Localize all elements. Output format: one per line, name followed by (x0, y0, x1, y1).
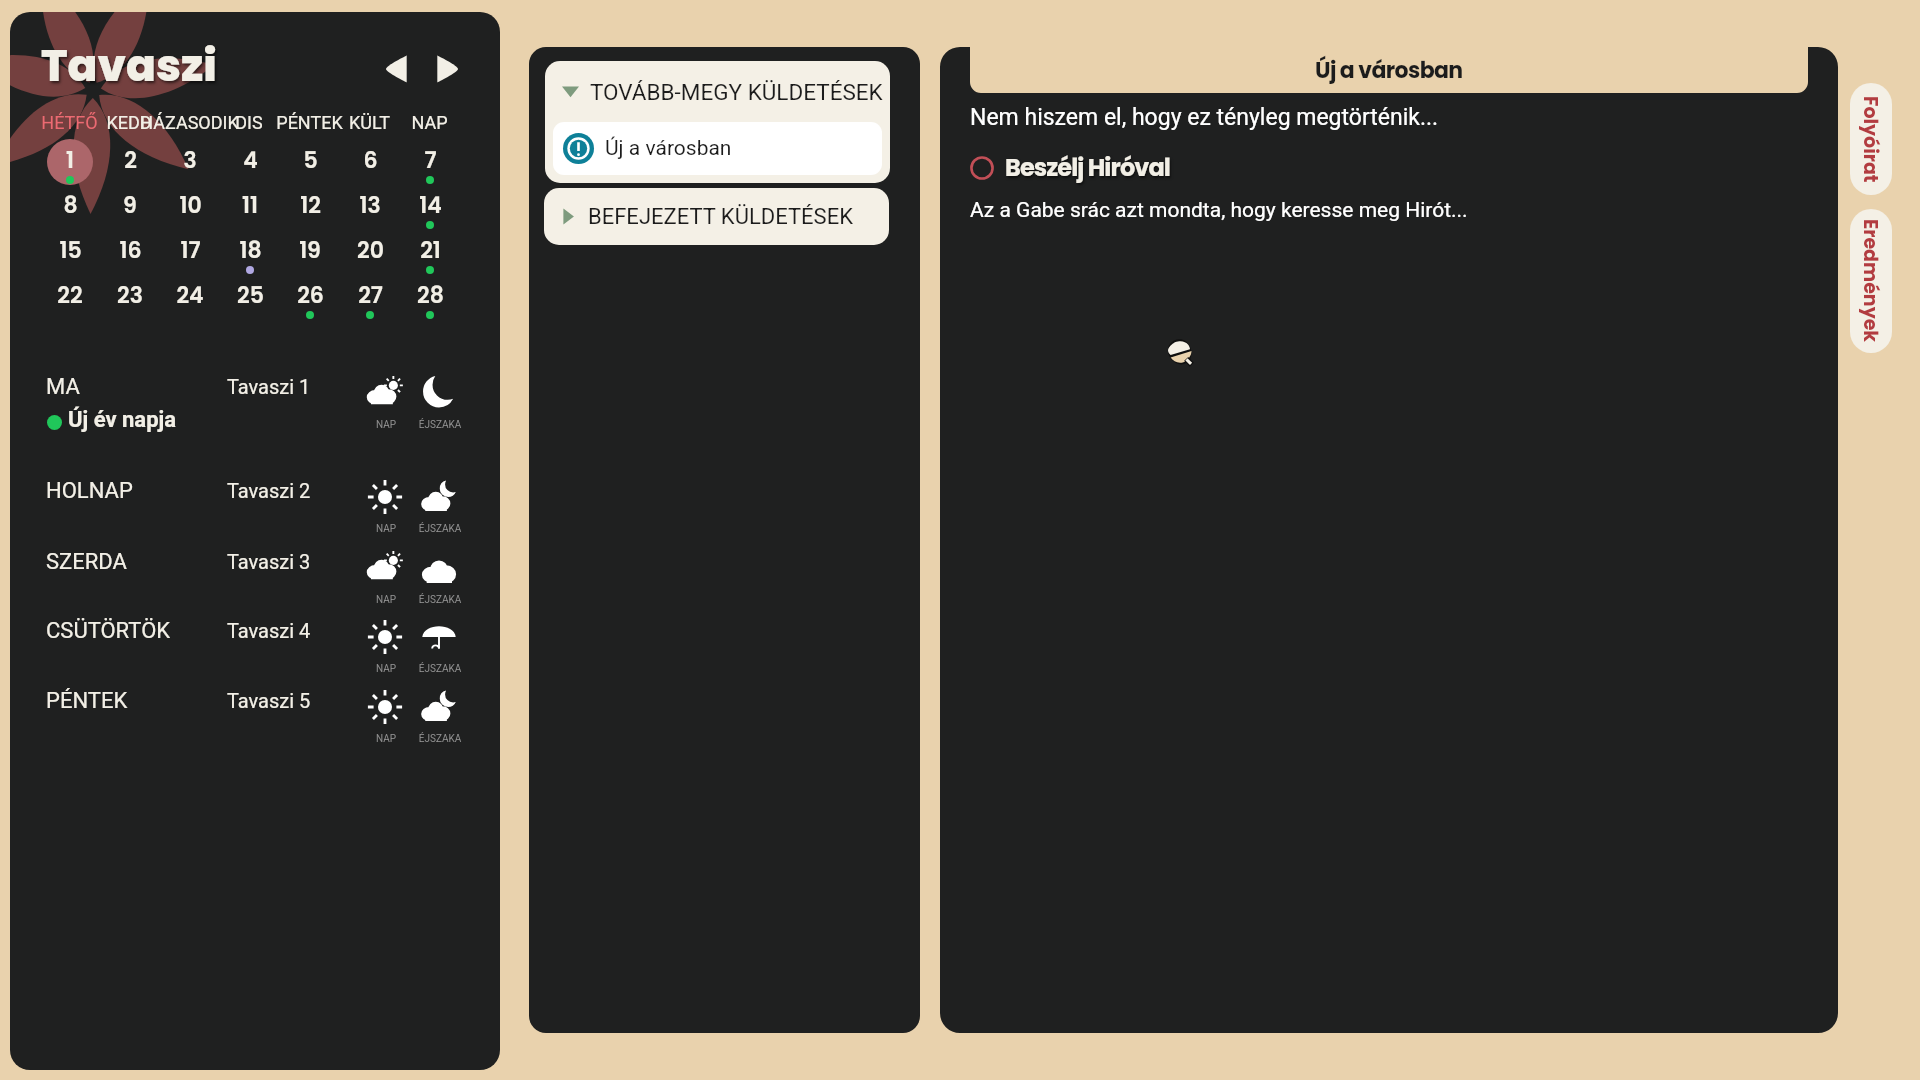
button[interactable]: 16 (100, 230, 160, 270)
staticText: 2 (124, 145, 137, 176)
button[interactable]: HOLNAP (10, 475, 500, 547)
staticText: NAP (358, 419, 414, 431)
staticText: PÉNTEK (46, 688, 128, 714)
button[interactable]: Új a városban (940, 47, 1838, 93)
button[interactable]: 28 (400, 275, 460, 315)
staticText: 4 (243, 145, 258, 176)
staticText: 28 (417, 280, 444, 311)
button[interactable]: 3 (160, 140, 220, 180)
button[interactable]: 9 (100, 185, 160, 225)
staticText: HOLNAP (46, 478, 133, 504)
staticText: 14 (419, 190, 442, 221)
button[interactable]: 23 (100, 275, 160, 315)
staticText: Tavaszi 5 (227, 689, 311, 712)
button[interactable]: 5 (280, 140, 340, 180)
button[interactable]: 19 (280, 230, 340, 270)
button[interactable]: 15 (40, 230, 100, 270)
staticText: 3 (183, 145, 197, 176)
staticText: 26 (297, 280, 324, 311)
staticText: Tavaszi 3 (227, 550, 311, 573)
button[interactable]: 27 (340, 275, 400, 315)
staticText: 6 (363, 145, 378, 176)
button[interactable]: Folyóirat (1850, 83, 1892, 195)
staticText: 13 (359, 190, 381, 221)
staticText: 5 (303, 145, 318, 176)
staticText: 18 (239, 235, 262, 266)
button[interactable]: 4 (220, 140, 280, 180)
button[interactable]: Next season (428, 50, 466, 88)
button[interactable]: 18 (220, 230, 280, 270)
staticText: HÉTFŐ (41, 112, 98, 133)
button[interactable]: 1 (40, 140, 100, 180)
staticText: Beszélj Hiróval (1005, 151, 1170, 185)
button[interactable]: 8 (40, 185, 100, 225)
button[interactable]: 12 (280, 185, 340, 225)
staticText: NAP (358, 594, 414, 606)
staticText: ÉJSZAKA (412, 663, 468, 675)
staticText: 23 (117, 280, 143, 311)
staticText: 16 (119, 235, 142, 266)
staticText: KEDD (106, 112, 152, 133)
staticText: Az a Gabe srác azt mondta, hogy keresse … (970, 198, 1468, 223)
staticText: MA (46, 374, 80, 400)
staticText: 24 (176, 280, 204, 311)
staticText: 22 (57, 280, 83, 311)
button[interactable]: 11 (220, 185, 280, 225)
button[interactable]: 13 (340, 185, 400, 225)
button[interactable]: 20 (340, 230, 400, 270)
staticText: Új év napja (68, 407, 177, 433)
staticText: KÜLT (349, 112, 390, 133)
staticText: NAP (358, 663, 414, 675)
button[interactable]: Új a városban (553, 122, 882, 175)
button[interactable]: BEFEJEZETT KÜLDETÉSEK (544, 188, 889, 245)
button[interactable]: 17 (160, 230, 220, 270)
button[interactable]: 6 (340, 140, 400, 180)
button[interactable]: 21 (400, 230, 460, 270)
staticText: Tavaszi 4 (227, 619, 311, 642)
staticText: 25 (237, 280, 264, 311)
staticText: 15 (59, 235, 82, 266)
button[interactable]: 2 (100, 140, 160, 180)
staticText: 21 (420, 235, 441, 266)
staticText: Új a városban (605, 136, 732, 161)
staticText: BEFEJEZETT KÜLDETÉSEK (588, 204, 853, 230)
staticText: 7 (424, 145, 437, 176)
button[interactable]: PÉNTEK (10, 685, 500, 757)
button[interactable]: 25 (220, 275, 280, 315)
button[interactable]: CSÜTÖRTÖK (10, 615, 500, 687)
staticText: 11 (242, 190, 258, 221)
staticText: ÉJSZAKA (412, 733, 468, 745)
staticText: NAP (411, 112, 448, 133)
staticText: HÁZASODIK (140, 112, 239, 133)
button[interactable]: MA (10, 371, 500, 443)
staticText: Tavaszi 1 (227, 375, 311, 398)
staticText: DIS (235, 112, 263, 133)
button[interactable]: Previous season (378, 50, 416, 88)
staticText: 20 (357, 235, 384, 266)
button[interactable]: 10 (160, 185, 220, 225)
staticText: ÉJSZAKA (412, 523, 468, 535)
staticText: Tavaszi 2 (227, 479, 311, 502)
staticText: PÉNTEK (276, 112, 343, 133)
staticText: 12 (300, 190, 321, 221)
staticText: NAP (358, 523, 414, 535)
staticText: ÉJSZAKA (412, 419, 468, 431)
button[interactable]: TOVÁBB-MEGY KÜLDETÉSEK (545, 61, 890, 122)
staticText: Tavaszi (41, 35, 217, 97)
button[interactable]: 24 (160, 275, 220, 315)
button[interactable]: 7 (400, 140, 460, 180)
staticText: TOVÁBB-MEGY KÜLDETÉSEK (590, 79, 883, 105)
staticText: 1 (66, 145, 74, 176)
staticText: Új a városban (1315, 55, 1463, 86)
button[interactable]: Eredmények (1850, 209, 1892, 353)
staticText: 8 (63, 190, 78, 221)
staticText: 9 (123, 190, 137, 221)
staticText: 17 (180, 235, 201, 266)
staticText: CSÜTÖRTÖK (46, 618, 171, 644)
button[interactable]: 26 (280, 275, 340, 315)
staticText: Folyóirat (1857, 96, 1884, 183)
button[interactable]: 14 (400, 185, 460, 225)
button[interactable]: 22 (40, 275, 100, 315)
button[interactable]: SZERDA (10, 546, 500, 618)
staticText: Nem hiszem el, hogy ez tényleg megtörtén… (970, 104, 1439, 131)
